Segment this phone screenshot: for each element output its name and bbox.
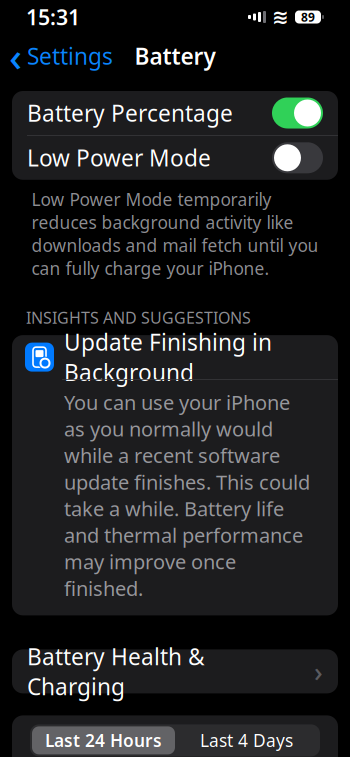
button[interactable]: Last 24 Hours xyxy=(32,726,175,754)
button[interactable]: ‹ xyxy=(0,25,113,86)
button[interactable]: Low Power Mode xyxy=(12,136,338,180)
staticText: Update Finishing in Background xyxy=(64,327,272,387)
button[interactable]: Update Finishing in Background xyxy=(12,335,338,615)
staticText: 15:31 xyxy=(26,3,80,31)
staticText: Low Power Mode xyxy=(27,143,211,173)
staticText: Settings xyxy=(27,41,113,71)
staticText: Low Power Mode temporarily reduces backg… xyxy=(31,188,318,280)
staticText: You can use your iPhone as you normally … xyxy=(64,389,310,601)
staticText: ≋ xyxy=(272,6,289,28)
button[interactable]: Last 4 Days xyxy=(175,726,318,754)
staticText: Last 4 Days xyxy=(200,729,293,752)
button[interactable]: Battery Percentage xyxy=(12,91,338,135)
staticText: Battery Percentage xyxy=(27,98,233,128)
button[interactable]: Battery Health & Charging xyxy=(12,649,338,693)
staticText: Battery xyxy=(134,41,215,71)
staticText: › xyxy=(314,654,323,689)
staticText: 89 xyxy=(301,9,315,25)
staticText: Last 24 Hours xyxy=(45,729,162,752)
staticText: ‹ xyxy=(9,29,22,82)
staticText: INSIGHTS AND SUGGESTIONS xyxy=(26,307,251,328)
staticText: Battery Health & Charging xyxy=(27,641,205,701)
